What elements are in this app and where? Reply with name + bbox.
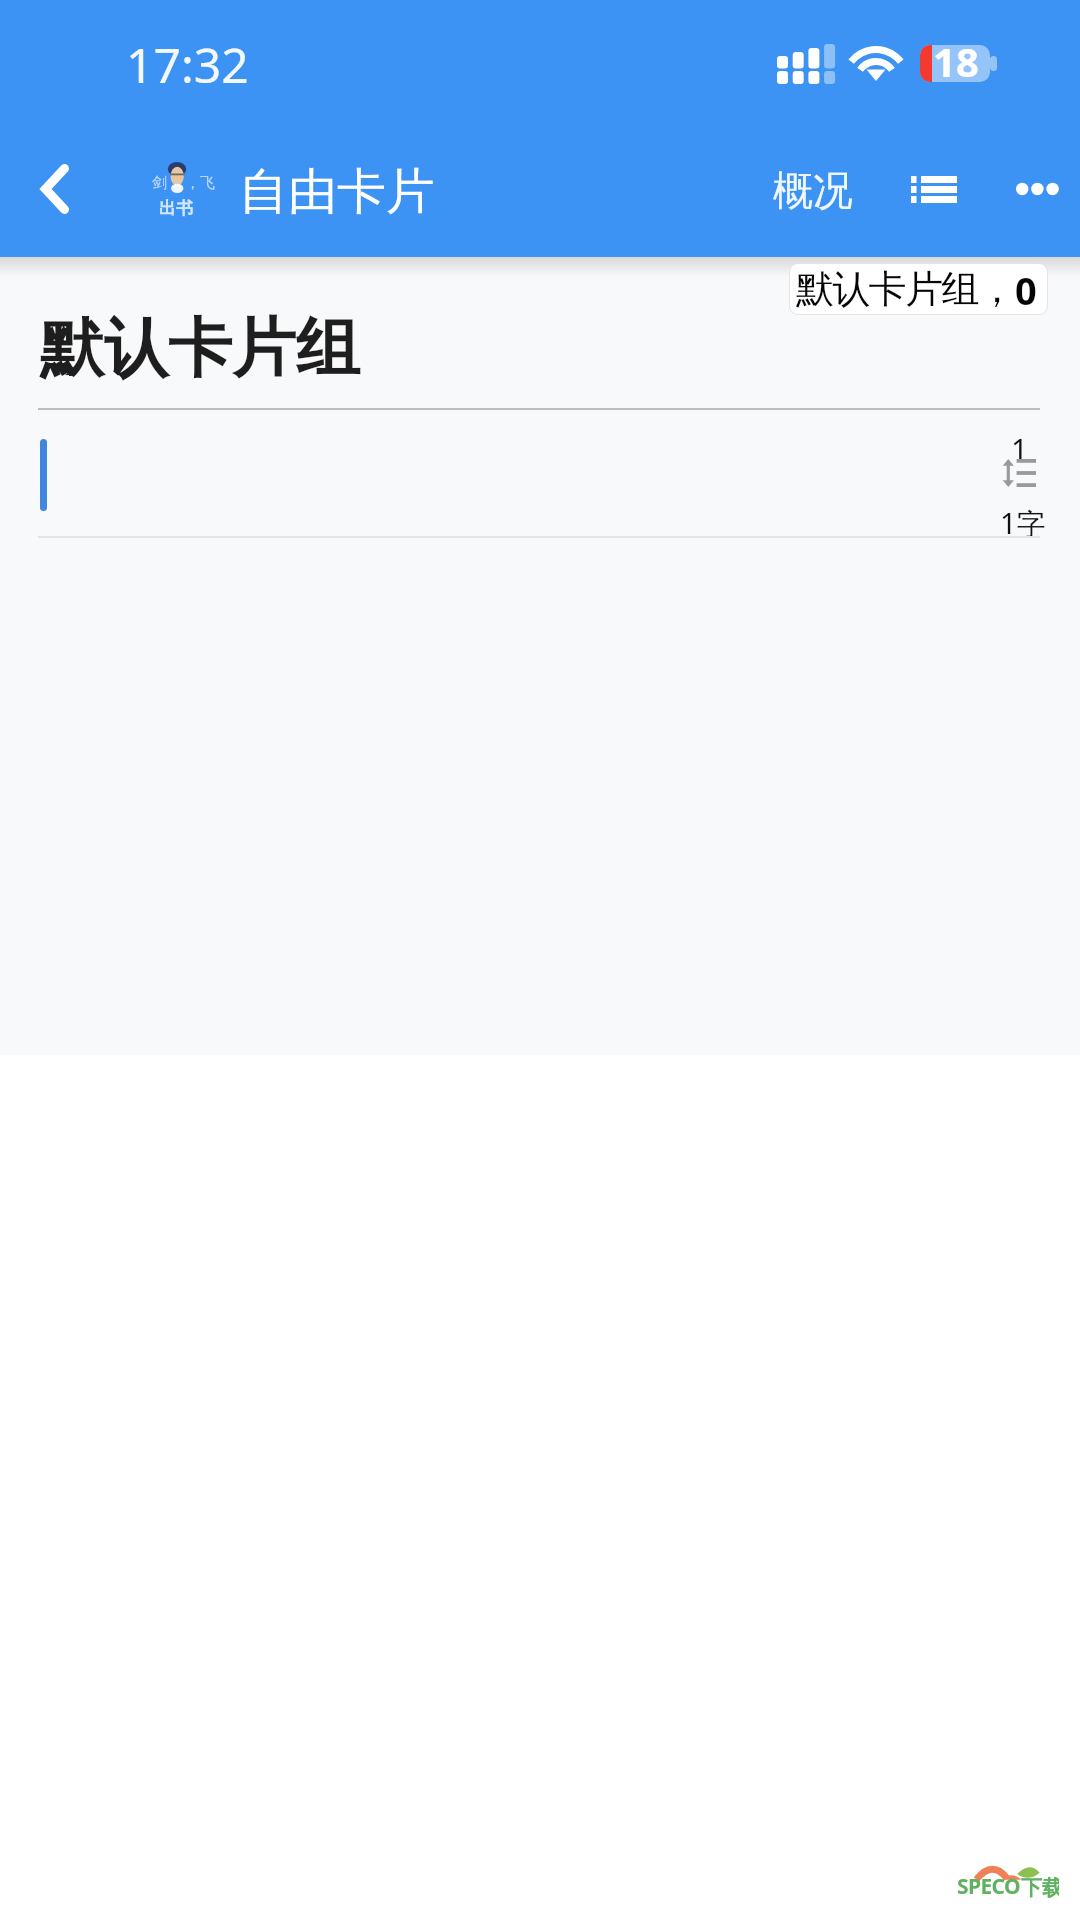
staticText: 1字	[1000, 503, 1046, 543]
staticText: 18	[933, 34, 979, 88]
button[interactable]: More options	[994, 143, 1080, 235]
staticText: 剑	[152, 174, 167, 193]
staticText: 默认卡片组	[40, 308, 360, 389]
button[interactable]: 默认卡片组，	[790, 264, 1047, 314]
staticText: ，飞	[185, 174, 215, 193]
button[interactable]: 概况	[752, 144, 874, 236]
staticText: 自由卡片	[239, 161, 435, 223]
staticText: 1	[1011, 429, 1029, 470]
staticText: 出书	[159, 198, 193, 219]
staticText: 默认卡片组，	[796, 265, 1015, 313]
staticText: 0	[1015, 264, 1037, 314]
button[interactable]: List view	[888, 143, 980, 235]
staticText: 概况	[773, 165, 853, 215]
staticText: SPECO	[957, 1872, 1021, 1901]
button[interactable]: 1	[0, 410, 1080, 536]
button[interactable]: Back	[3, 141, 107, 237]
staticText: 17:32	[126, 32, 249, 97]
staticText: 下载	[1021, 1875, 1059, 1901]
